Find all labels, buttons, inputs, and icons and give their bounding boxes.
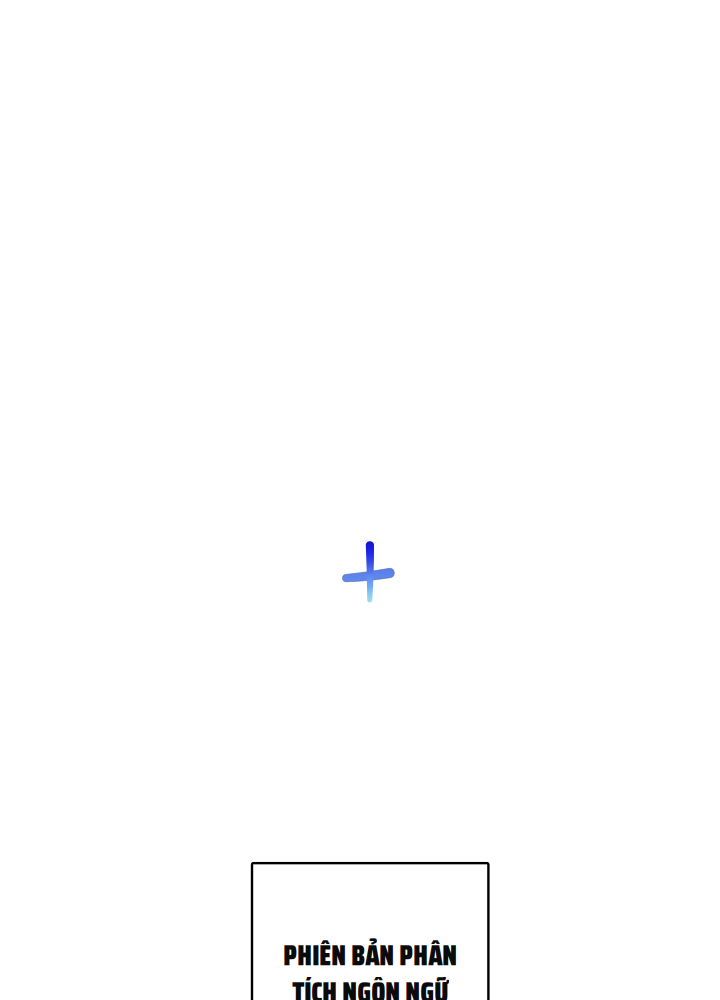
staticText: TÍCH NGÔN NGỮ — [292, 971, 448, 1000]
staticText: PHIÊN BẢN PHÂN — [283, 934, 457, 978]
